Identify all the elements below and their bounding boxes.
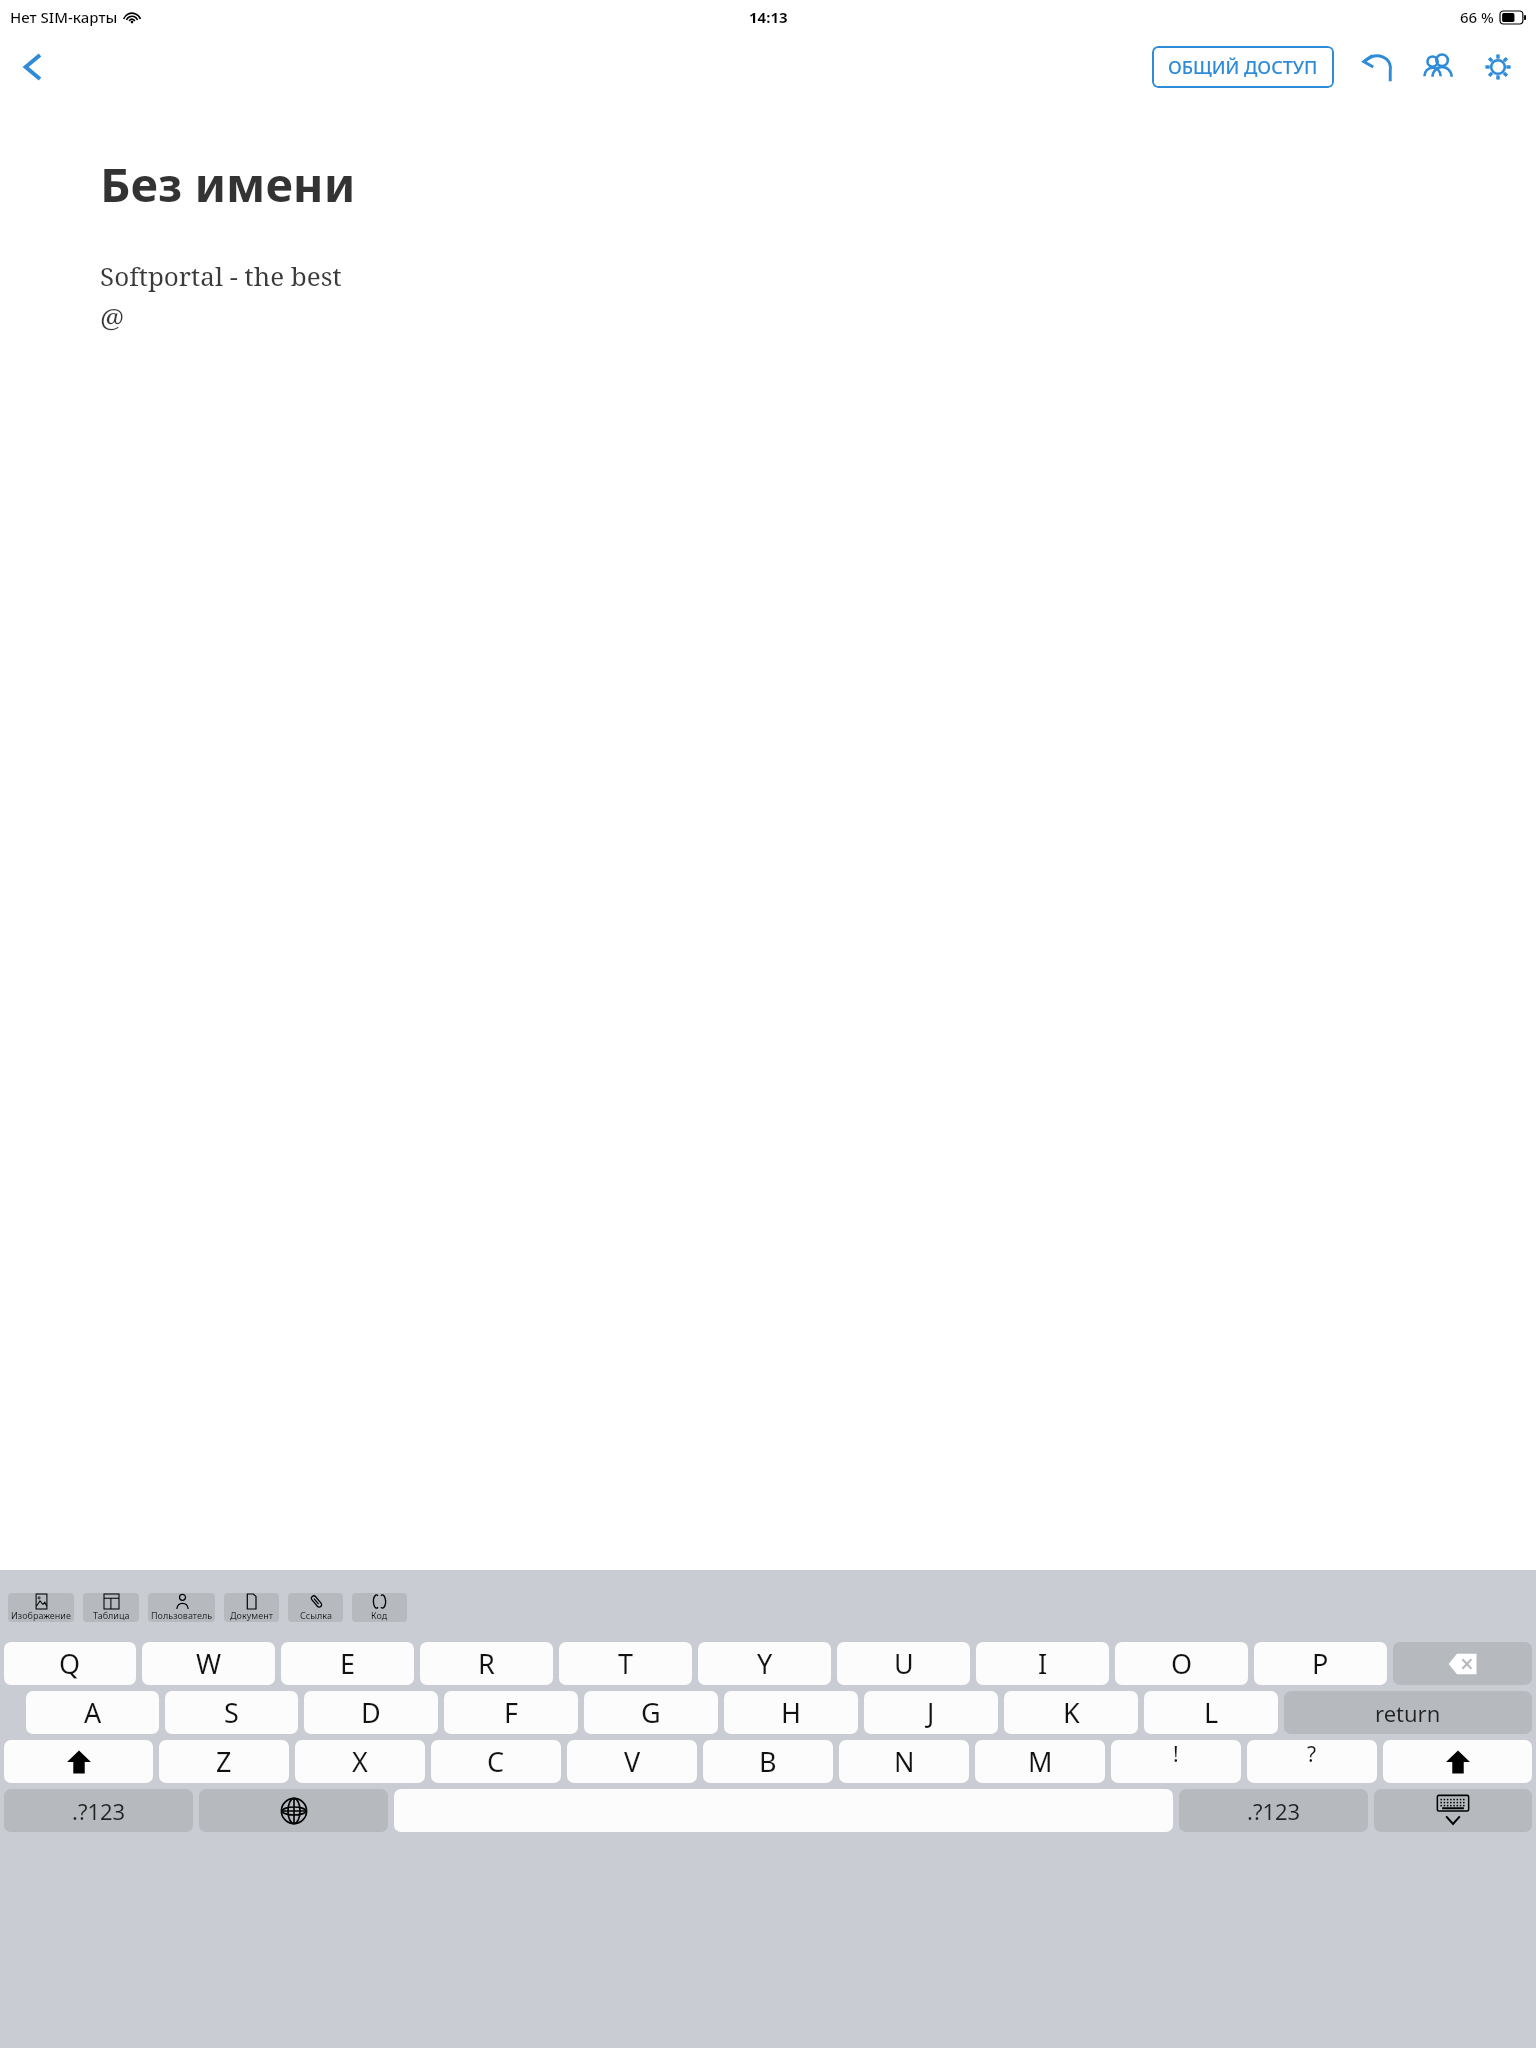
button[interactable]: Collaborate [1414,43,1462,91]
staticText: Ссылка [300,1609,332,1621]
staticText: M [1028,1743,1053,1780]
staticText: G [641,1694,661,1731]
button[interactable]: S [165,1691,298,1734]
staticText: D [361,1694,381,1731]
staticText: K [1063,1694,1080,1731]
staticText: Q [59,1645,81,1682]
staticText: @ [100,299,124,334]
button[interactable]: F [444,1691,578,1734]
staticText: W [196,1645,222,1682]
staticText: B [759,1743,777,1780]
button[interactable]: T [559,1642,692,1685]
button[interactable]: Back [8,41,60,93]
button[interactable]: ОБЩИЙ ДОСТУП [1152,46,1334,88]
staticText: O [1171,1645,1193,1682]
button[interactable]: .?123 [1179,1789,1368,1832]
button[interactable]: Q [4,1642,136,1685]
button[interactable]: Change keyboard language [199,1789,388,1832]
button[interactable]: Delete [1393,1642,1532,1685]
button[interactable]: A [26,1691,159,1734]
button[interactable]: Пользователь [148,1593,215,1622]
button[interactable]: Settings [1474,43,1522,91]
button[interactable]: N [839,1740,969,1783]
button[interactable]: Код [352,1593,407,1622]
staticText: V [624,1743,641,1780]
button[interactable]: E [281,1642,414,1685]
staticText: P [1312,1645,1329,1682]
staticText: Таблица [93,1609,130,1621]
button[interactable]: O [1115,1642,1248,1685]
button[interactable]: Документ [224,1593,279,1622]
staticText: Нет SIM-карты [10,7,118,27]
staticText: Y [757,1645,773,1682]
staticText: .?123 [1247,1796,1301,1826]
staticText: H [781,1694,802,1731]
button[interactable]: D [304,1691,438,1734]
button[interactable]: ! [1111,1740,1241,1783]
staticText: Код [371,1609,388,1621]
button[interactable]: M [975,1740,1105,1783]
button[interactable]: U [837,1642,970,1685]
staticText: ! [1173,1740,1179,1769]
button[interactable]: P [1254,1642,1387,1685]
staticText: Без имени [100,152,356,216]
button[interactable]: Shift [1383,1740,1532,1783]
button[interactable]: C [431,1740,561,1783]
staticText: 14:13 [749,7,788,27]
staticText: .?123 [72,1796,126,1826]
staticText: 66 % [1460,7,1494,27]
button[interactable]: Изображение [8,1593,74,1622]
staticText: L [1204,1694,1219,1731]
button[interactable]: Shift [4,1740,153,1783]
button[interactable]: .?123 [4,1789,193,1832]
button[interactable]: Z [159,1740,289,1783]
staticText: Softportal - the best [100,258,342,293]
button[interactable]: W [142,1642,275,1685]
staticText: T [618,1645,634,1682]
staticText: F [504,1694,519,1731]
button[interactable]: K [1004,1691,1138,1734]
button[interactable]: L [1144,1691,1278,1734]
staticText: Документ [230,1609,273,1621]
staticText: Пользователь [151,1609,213,1621]
staticText: U [894,1645,914,1682]
staticText: A [84,1694,102,1731]
staticText: Z [216,1743,232,1780]
button[interactable]: Hide keyboard [1374,1789,1532,1832]
button[interactable]: X [295,1740,425,1783]
button[interactable]: J [864,1691,998,1734]
staticText: E [340,1645,356,1682]
button[interactable]: Undo [1354,43,1402,91]
button[interactable]: B [703,1740,833,1783]
staticText: ОБЩИЙ ДОСТУП [1168,55,1318,80]
staticText: return [1375,1698,1441,1728]
button[interactable]: H [724,1691,858,1734]
button[interactable]: Таблица [83,1593,139,1622]
button[interactable]: G [584,1691,718,1734]
staticText: X [352,1743,368,1780]
staticText: Изображение [11,1609,71,1621]
staticText: I [1038,1645,1048,1682]
button[interactable]: I [976,1642,1109,1685]
staticText: S [224,1694,239,1731]
staticText: J [927,1694,935,1731]
button[interactable]: Y [698,1642,831,1685]
staticText: ? [1307,1740,1317,1769]
button[interactable]: R [420,1642,553,1685]
button[interactable]: V [567,1740,697,1783]
staticText: C [487,1743,505,1780]
button[interactable]: ? [1247,1740,1377,1783]
button[interactable]: Ссылка [288,1593,343,1622]
staticText: R [478,1645,495,1682]
staticText: N [894,1743,915,1780]
button[interactable]: return [1284,1691,1532,1734]
